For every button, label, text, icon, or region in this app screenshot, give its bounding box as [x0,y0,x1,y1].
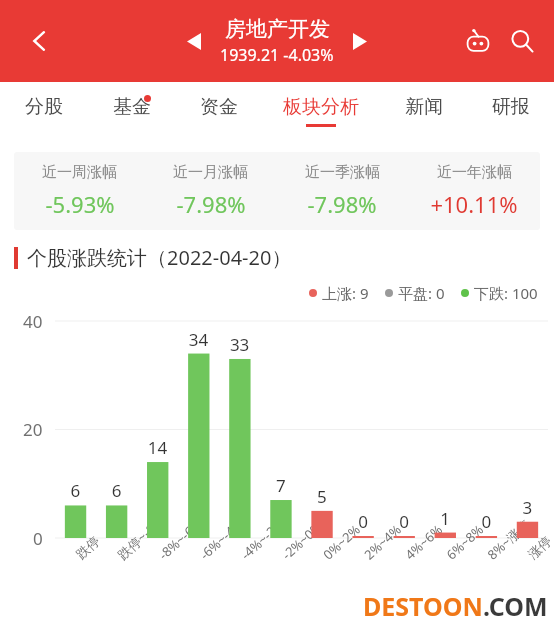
button[interactable]: 个股涨跌统计（2022-04-20） [14,244,554,271]
staticText: 平盘: 0 [398,283,445,303]
button[interactable]: 房地产开发 [220,16,334,66]
staticText: -7.98% [307,189,377,219]
button[interactable]: 分股 [0,82,88,140]
staticText: 1939.21 -4.03% [220,44,334,66]
staticText: 上涨: 9 [322,283,369,303]
button[interactable]: 基金 [88,82,175,140]
staticText: 个股涨跌统计（2022-04-20） [27,244,292,271]
staticText: 近一月涨幅 [173,163,248,182]
staticText: 分股 [25,95,63,119]
staticText: 研报 [492,95,530,119]
staticText: 新闻 [405,95,443,119]
staticText: 下跌: 100 [474,283,538,303]
staticText: -7.98% [176,189,246,219]
button[interactable]: 近一周涨幅 [14,152,540,230]
staticText: 近一季涨幅 [305,163,380,182]
staticText: 近一周涨幅 [42,163,117,182]
button[interactable]: 资金 [175,82,262,140]
staticText: .COM [483,589,548,623]
staticText: 基金 [113,95,151,119]
staticText: 房地产开发 [225,16,330,42]
staticText: DESTOON [363,589,483,623]
staticText: 近一年涨幅 [437,163,512,182]
button[interactable]: 板块分析 [262,82,380,140]
staticText: -5.93% [45,189,115,219]
button[interactable]: Assistant robot [456,19,500,63]
button[interactable]: Previous sector [174,21,214,61]
staticText: +10.11% [430,189,518,219]
button[interactable]: Back [18,19,62,63]
button[interactable]: Search [500,19,544,63]
staticText: 资金 [200,95,238,119]
staticText: 板块分析 [283,95,359,119]
button[interactable]: Next sector [340,21,380,61]
button[interactable]: 研报 [467,82,554,140]
button[interactable]: 新闻 [380,82,467,140]
